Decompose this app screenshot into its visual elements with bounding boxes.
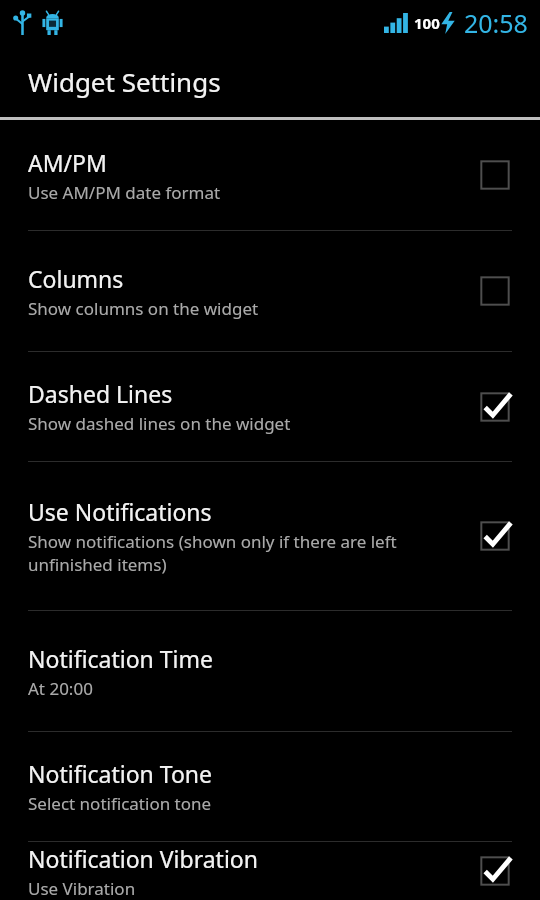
staticText: AM/PM [28,147,107,178]
button[interactable]: AM/PM [0,120,540,230]
button[interactable]: Checked [473,514,517,558]
button[interactable]: Unchecked [473,269,517,313]
button[interactable]: Checked [473,849,517,893]
button[interactable]: Notification Vibration [0,842,540,900]
staticText: Show dashed lines on the widget [28,412,291,435]
button[interactable]: Notification Time [0,611,540,731]
button[interactable]: Checked [473,385,517,429]
staticText: Notification Vibration [28,843,258,874]
staticText: Select notification tone [28,792,212,815]
staticText: At 20:00 [28,677,93,700]
staticText: Use Notifications [28,496,212,527]
staticText: Show columns on the widget [28,297,259,320]
staticText: Notification Time [28,643,213,674]
staticText: Dashed Lines [28,378,173,409]
button[interactable]: Dashed Lines [0,352,540,461]
staticText: 20:58 [464,6,528,40]
staticText: Use AM/PM date format [28,181,221,204]
button[interactable]: Columns [0,231,540,351]
staticText: Notification Tone [28,758,213,789]
staticText: Use Vibration [28,877,136,900]
staticText: Columns [28,263,124,294]
button[interactable]: Unchecked [473,153,517,197]
staticText: Show notifications (shown only if there … [28,530,438,576]
staticText: Widget Settings [28,64,221,99]
button[interactable]: Use Notifications [0,462,540,610]
button[interactable]: Notification Tone [0,732,540,841]
staticText: 100 [414,13,440,33]
